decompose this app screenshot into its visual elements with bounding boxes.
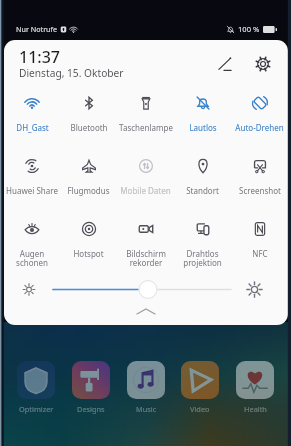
staticText: Nur Notrufe [16, 24, 58, 34]
staticText: Screenshot [239, 185, 281, 196]
button[interactable]: Flugmodus [60, 151, 117, 196]
staticText: NFC [252, 248, 268, 259]
button[interactable]: Bluetooth [60, 88, 117, 133]
staticText: Bildschirm rekorder [126, 248, 166, 269]
staticText: Health [244, 404, 267, 414]
staticText: Huawei Share [6, 185, 58, 196]
staticText: DH_Gast [16, 122, 49, 133]
staticText: Taschenlampe [119, 122, 173, 133]
staticText: 100 % [238, 24, 260, 34]
button[interactable]: Lautlos [174, 88, 231, 133]
button[interactable]: Bildschirm rekorder [117, 214, 174, 269]
button[interactable]: NFC [231, 214, 288, 259]
staticText: Augen schonen [16, 248, 48, 269]
staticText: Music [136, 404, 157, 414]
staticText: Standort [186, 185, 219, 196]
button[interactable]: Einstellungen [251, 52, 275, 76]
button[interactable]: Einklappen [4, 302, 288, 320]
button[interactable]: Mobile Daten [117, 151, 174, 196]
button[interactable]: Augen schonen [4, 214, 60, 269]
staticText: Bluetooth [70, 122, 108, 133]
button[interactable]: Music [127, 361, 165, 414]
button[interactable]: Auto-Drehen [231, 88, 288, 133]
staticText: 11:37 [19, 46, 60, 68]
staticText: Designs [77, 404, 105, 414]
button[interactable]: Bearbeiten [213, 52, 237, 76]
button[interactable]: Designs [72, 361, 110, 414]
button[interactable]: Huawei Share [4, 151, 60, 196]
button[interactable]: Standort [174, 151, 231, 196]
staticText: Dienstag, 15. Oktober [19, 66, 124, 80]
staticText: Drahtlos projektion [183, 248, 222, 269]
button[interactable]: Screenshot [231, 151, 288, 196]
button[interactable]: Taschenlampe [117, 88, 174, 133]
staticText: Lautlos [189, 122, 217, 133]
staticText: Optimizer [19, 404, 54, 414]
button[interactable]: Hotspot [60, 214, 117, 259]
button[interactable]: Optimizer [17, 361, 55, 414]
staticText: Video [190, 404, 210, 414]
button[interactable]: Helligkeit [4, 277, 288, 302]
button[interactable]: DH_Gast [4, 88, 60, 133]
staticText: Auto-Drehen [235, 122, 284, 133]
staticText: Mobile Daten [120, 185, 171, 196]
staticText: Hotspot [73, 248, 104, 259]
staticText: Flugmodus [67, 185, 110, 196]
button[interactable]: Health [236, 361, 274, 414]
button[interactable]: Drahtlos projektion [174, 214, 231, 269]
button[interactable]: Video [181, 361, 219, 414]
